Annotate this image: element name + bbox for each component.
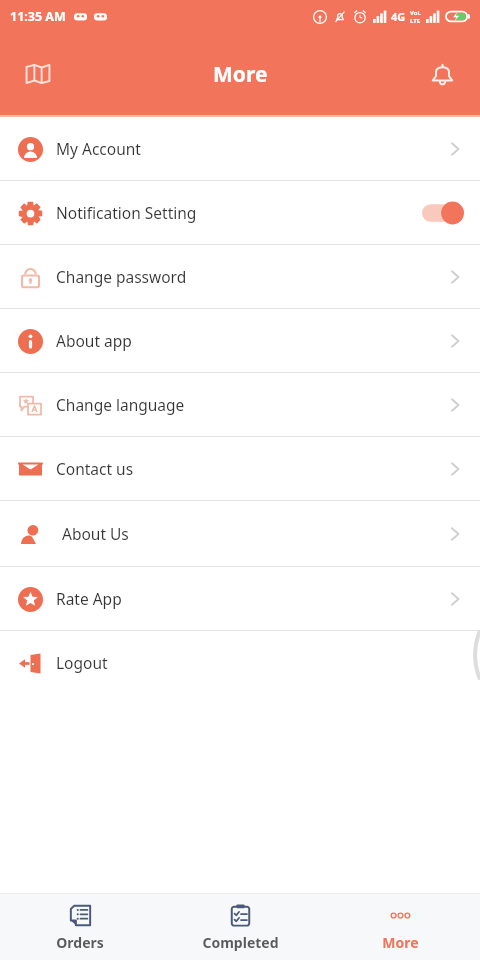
staticText: Change password <box>56 266 187 287</box>
staticText: Rate App <box>56 588 122 609</box>
button[interactable]: Change language <box>0 373 480 436</box>
staticText: Logout <box>56 652 108 673</box>
button[interactable]: Completed <box>160 894 320 960</box>
button[interactable]: About Us <box>0 501 480 566</box>
staticText: Contact us <box>56 458 134 479</box>
button[interactable]: My Account <box>0 117 480 180</box>
staticText: Completed <box>202 933 279 952</box>
staticText: Notification Setting <box>56 202 197 223</box>
button[interactable]: About app <box>0 309 480 372</box>
button[interactable]: Map <box>14 50 62 98</box>
button[interactable]: Change password <box>0 245 480 308</box>
button[interactable]: Notifications <box>418 50 466 98</box>
staticText: Orders <box>56 933 104 952</box>
staticText: Change language <box>56 394 185 415</box>
button[interactable]: Rate App <box>0 567 480 630</box>
staticText: About app <box>56 330 132 351</box>
button[interactable]: Logout <box>0 631 480 694</box>
staticText: About Us <box>62 523 129 544</box>
button[interactable]: Contact us <box>0 437 480 500</box>
staticText: LTE <box>410 17 421 25</box>
staticText: More <box>213 60 268 89</box>
button[interactable]: Notification Setting <box>0 181 480 244</box>
staticText: 11:35 AM <box>10 8 66 25</box>
staticText: More <box>382 933 419 952</box>
staticText: 4G <box>391 9 406 24</box>
staticText: VoL <box>410 9 421 17</box>
button[interactable]: Orders <box>0 894 160 960</box>
staticText: My Account <box>56 138 141 159</box>
button[interactable]: Notification toggle <box>422 202 466 224</box>
button[interactable]: More <box>320 894 480 960</box>
